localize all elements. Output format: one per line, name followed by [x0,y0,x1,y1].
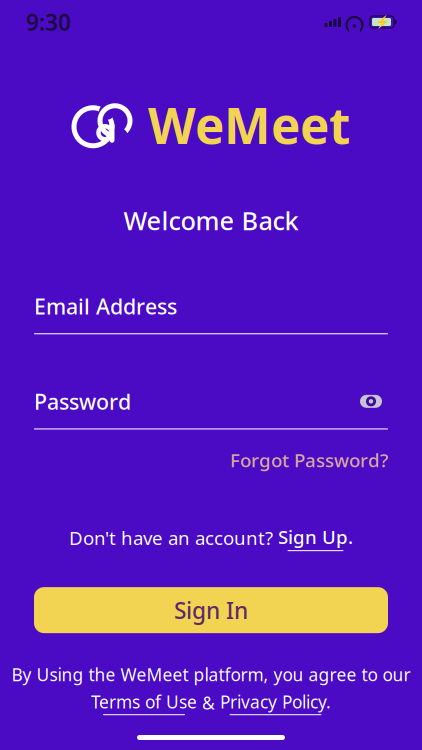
staticText: Sign In [174,595,248,625]
staticText: Password [34,387,131,415]
staticText: Forgot Password? [230,448,388,472]
staticText: 9:30 [26,7,71,37]
button[interactable]: Forgot Password? [230,444,388,476]
staticText: & [197,691,220,714]
staticText: Don't have an account? [69,525,278,550]
staticText: Email Address [34,292,177,320]
button[interactable]: Don't have an account? [69,518,353,557]
staticText: Welcome Back [123,203,298,237]
staticText: Terms of Use [91,690,197,713]
staticText: WeMeet [148,92,350,157]
staticText: Privacy Policy. [220,690,331,713]
staticText: ⚡ [374,15,389,29]
button[interactable]: Privacy Policy. [220,690,331,715]
staticText: Sign Up. [278,524,353,549]
button[interactable]: Terms of Use [91,690,197,715]
button[interactable]: Show password [354,388,388,414]
staticText: By Using the WeMeet platform, you agree … [11,663,410,686]
button[interactable]: Sign In [34,587,388,633]
